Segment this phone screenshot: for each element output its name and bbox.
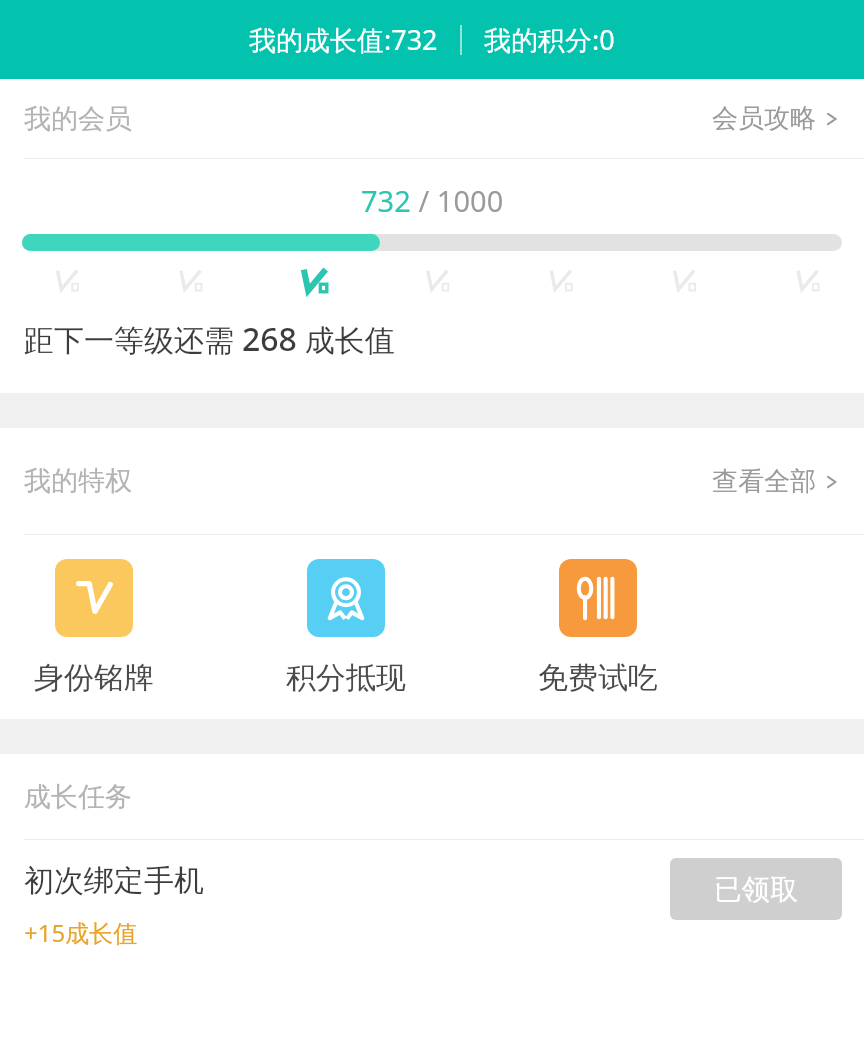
button[interactable]: 免费试吃 (528, 559, 668, 697)
staticText: 免费试吃 (538, 659, 658, 697)
staticText: 会员攻略 (712, 102, 816, 135)
button[interactable]: 初次绑定手机 (0, 840, 864, 960)
staticText: 成长值 (297, 319, 395, 360)
staticText: 距下一等级还需 (24, 319, 242, 360)
staticText: 我的会员 (24, 102, 132, 136)
button[interactable]: 我的会员 (0, 79, 864, 158)
staticText: 初次绑定手机 (24, 862, 204, 900)
staticText: / 1000 (411, 181, 504, 220)
staticText: 268 (242, 317, 297, 361)
button[interactable]: 身份铭牌 (24, 559, 164, 697)
staticText: 732 (361, 181, 411, 220)
button[interactable]: 我的特权 (0, 428, 864, 534)
button[interactable]: 积分抵现 (276, 559, 416, 697)
staticText: +15成长值 (24, 916, 138, 949)
staticText: 我的特权 (24, 464, 132, 498)
staticText: 查看全部 (712, 465, 816, 498)
staticText: 我的成长值:732 (249, 21, 438, 58)
staticText: 积分抵现 (286, 659, 406, 697)
staticText: 成长任务 (24, 780, 132, 814)
staticText: 已领取 (714, 872, 798, 907)
staticText: 我的积分:0 (484, 21, 615, 58)
staticText: 身份铭牌 (34, 659, 154, 697)
button[interactable]: 已领取 (670, 858, 842, 920)
